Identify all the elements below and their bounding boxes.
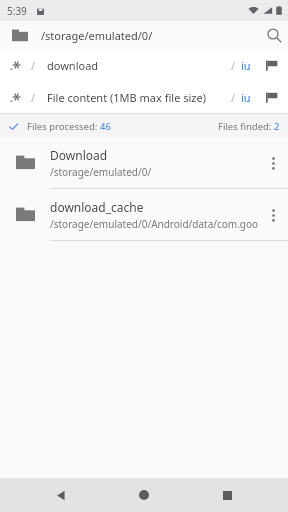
staticText: download_cache [50,199,144,215]
button[interactable]: iu [241,90,251,105]
button[interactable]: Back [39,478,83,512]
staticText: 46 [100,120,111,133]
button[interactable]: iu [241,58,251,73]
staticText: /storage/emulated/0/Android/data/com.goo… [50,217,258,231]
staticText: / [231,90,236,105]
staticText: / [31,90,36,105]
button[interactable]: Search [260,21,288,49]
staticText: 5:39 [7,4,27,18]
button[interactable]: More options [258,195,288,235]
button[interactable]: Recent apps [205,478,249,512]
staticText: Files finded: [218,120,274,133]
button[interactable]: Home [122,478,166,512]
staticText: / [231,58,236,73]
button[interactable]: download_cache [0,189,288,241]
staticText: / [31,58,36,73]
button[interactable]: More options [258,143,288,183]
button[interactable]: / [0,81,288,113]
staticText: /storage/emulated/0/ [50,165,152,179]
staticText: 2 [274,120,280,133]
staticText: File content (1MB max file size) [47,90,207,105]
button[interactable]: Flag [263,89,279,105]
staticText: Download [50,147,108,163]
button[interactable]: Flag [263,57,279,73]
staticText: iu [241,90,251,105]
staticText: /storage/emulated/0/ [41,28,153,43]
staticText: Files processed: [27,120,100,133]
button[interactable]: Download [0,137,288,189]
button[interactable]: / [0,49,288,81]
staticText: download [47,58,99,73]
button[interactable]: /storage/emulated/0/ [0,28,161,43]
staticText: iu [241,58,251,73]
